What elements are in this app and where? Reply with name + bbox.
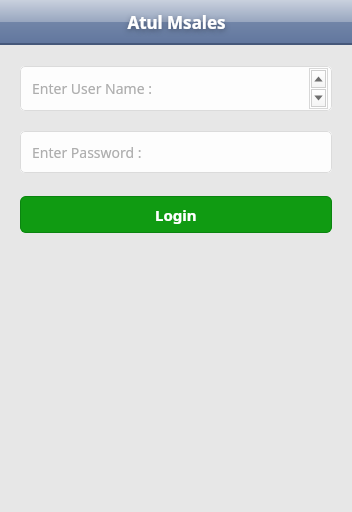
button[interactable]: Enter User Name : — [20, 66, 332, 111]
staticText: Login — [155, 205, 197, 225]
button[interactable]: Login — [20, 196, 332, 233]
staticText: Enter User Name : — [32, 79, 152, 98]
staticText: Enter Password : — [32, 143, 142, 162]
button[interactable]: Adjust value — [309, 68, 328, 109]
staticText: Atul Msales — [127, 11, 226, 34]
button[interactable]: Enter Password : — [20, 131, 332, 173]
